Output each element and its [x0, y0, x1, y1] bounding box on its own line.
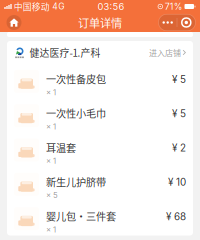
staticText: 4G	[52, 1, 64, 12]
staticText: ¥ 5	[172, 73, 186, 85]
staticText: ¥ 68	[166, 211, 186, 222]
staticText: × 5	[46, 191, 58, 200]
button[interactable]: 婴儿包·三件套	[7, 201, 193, 235]
staticText: × 1	[46, 122, 56, 131]
staticText: 中国移动	[14, 0, 50, 13]
staticText: 新生儿护脐带	[46, 174, 106, 189]
staticText: × 1	[46, 88, 56, 97]
staticText: ¥ 10	[168, 176, 186, 188]
staticText: 进入店铺	[149, 47, 181, 58]
staticText: 订单详情	[78, 14, 122, 31]
staticText: 71%	[165, 1, 183, 12]
staticText: 耳温套	[46, 140, 76, 155]
staticText: ¥ 2	[172, 142, 186, 154]
button[interactable]: 耳温套	[7, 133, 193, 167]
button[interactable]: Home	[4, 13, 23, 32]
staticText: 一次性备皮包	[46, 72, 106, 86]
staticText: 婴儿包·三件套	[46, 209, 116, 223]
button[interactable]: 一次性小毛巾	[7, 98, 193, 133]
button[interactable]: 进入店铺	[149, 47, 186, 58]
staticText: 健达医疗-1.产科	[29, 45, 100, 60]
staticText: × 1	[46, 225, 56, 234]
button[interactable]: 一次性备皮包	[7, 64, 193, 98]
staticText: × 1	[46, 156, 56, 166]
button[interactable]: More options	[158, 14, 195, 31]
staticText: 一次性小毛巾	[46, 106, 106, 121]
staticText: 03:56	[97, 1, 124, 12]
staticText: ¥ 5	[172, 108, 186, 120]
button[interactable]: 新生儿护脐带	[7, 167, 193, 201]
